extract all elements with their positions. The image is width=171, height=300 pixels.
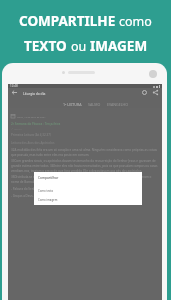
button[interactable]: 1ª LEITURA xyxy=(60,100,85,108)
staticText: 32A multidão dos fiéis era um só coração… xyxy=(11,148,159,157)
staticText: 33Com grandes sinais, os apóstolos davam… xyxy=(11,159,159,173)
staticText: EVANGELHO xyxy=(107,102,129,107)
staticText: 2ª Semana da Páscoa : Terça-feira xyxy=(11,122,61,126)
staticText: 36Distribuía-se então a cada um conforme… xyxy=(11,175,159,184)
button[interactable]: EVANGELHO xyxy=(104,100,132,108)
staticText: - Palavra do Senhor. xyxy=(11,187,39,191)
staticText: 12:48 xyxy=(10,84,18,88)
staticText: Liturgia do dia xyxy=(23,91,46,95)
staticText: como xyxy=(119,13,152,30)
staticText: - Graças a Deus. xyxy=(11,194,34,198)
staticText: Primeira Leitura (At 4,32-37) xyxy=(11,133,51,137)
button[interactable]: Back xyxy=(10,88,19,97)
staticText: SALMO xyxy=(88,102,101,107)
staticText: IMAGEM xyxy=(90,37,148,55)
staticText: Terça, 13 de abril de 2021 xyxy=(17,115,46,118)
staticText: COMPARTILHE xyxy=(19,12,119,30)
staticText: Como imagem xyxy=(38,198,58,202)
staticText: Compartilhar xyxy=(38,176,59,180)
staticText: TEXTO xyxy=(24,37,71,55)
staticText: Como texto xyxy=(38,189,54,193)
button[interactable]: Como texto xyxy=(34,186,142,195)
button[interactable]: SALMO xyxy=(85,100,104,108)
button[interactable]: Como imagem xyxy=(34,195,142,204)
button[interactable]: Refresh xyxy=(140,88,149,97)
button[interactable]: Share xyxy=(151,88,160,97)
staticText: 1ª LEITURA xyxy=(63,102,82,107)
staticText: ou xyxy=(71,38,90,55)
staticText: Leitura dos Atos dos Apóstolos xyxy=(11,141,55,145)
